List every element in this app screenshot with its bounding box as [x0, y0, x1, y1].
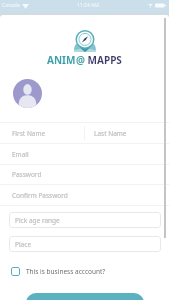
button[interactable]: Pick age range [9, 212, 161, 228]
staticText: @ [76, 53, 85, 67]
button[interactable]: Password [0, 165, 169, 184]
staticText: This is business acccount? [26, 267, 106, 276]
staticText: MAPPS [85, 53, 122, 67]
button[interactable]: SIGN UP [26, 293, 144, 300]
staticText: First Name [12, 129, 46, 138]
staticText: Password [12, 170, 42, 179]
staticText: 11:24 AM [77, 2, 99, 9]
staticText: Place [15, 240, 32, 249]
staticText: ANIM [47, 53, 76, 67]
staticText: Pick age range [15, 216, 60, 225]
button[interactable]: First Name [0, 123, 84, 143]
staticText: Email [12, 150, 29, 159]
button[interactable]: This is business acccount? [11, 265, 106, 277]
staticText: Canada [2, 2, 20, 9]
staticText: Last Name [94, 129, 127, 138]
button[interactable]: Confirm Password [0, 185, 169, 205]
button[interactable]: Place [9, 236, 161, 252]
button[interactable]: Email [0, 144, 169, 164]
staticText: Confirm Password [12, 191, 68, 200]
button[interactable]: Profile photo [13, 79, 42, 108]
button[interactable]: Last Name [84, 123, 169, 143]
